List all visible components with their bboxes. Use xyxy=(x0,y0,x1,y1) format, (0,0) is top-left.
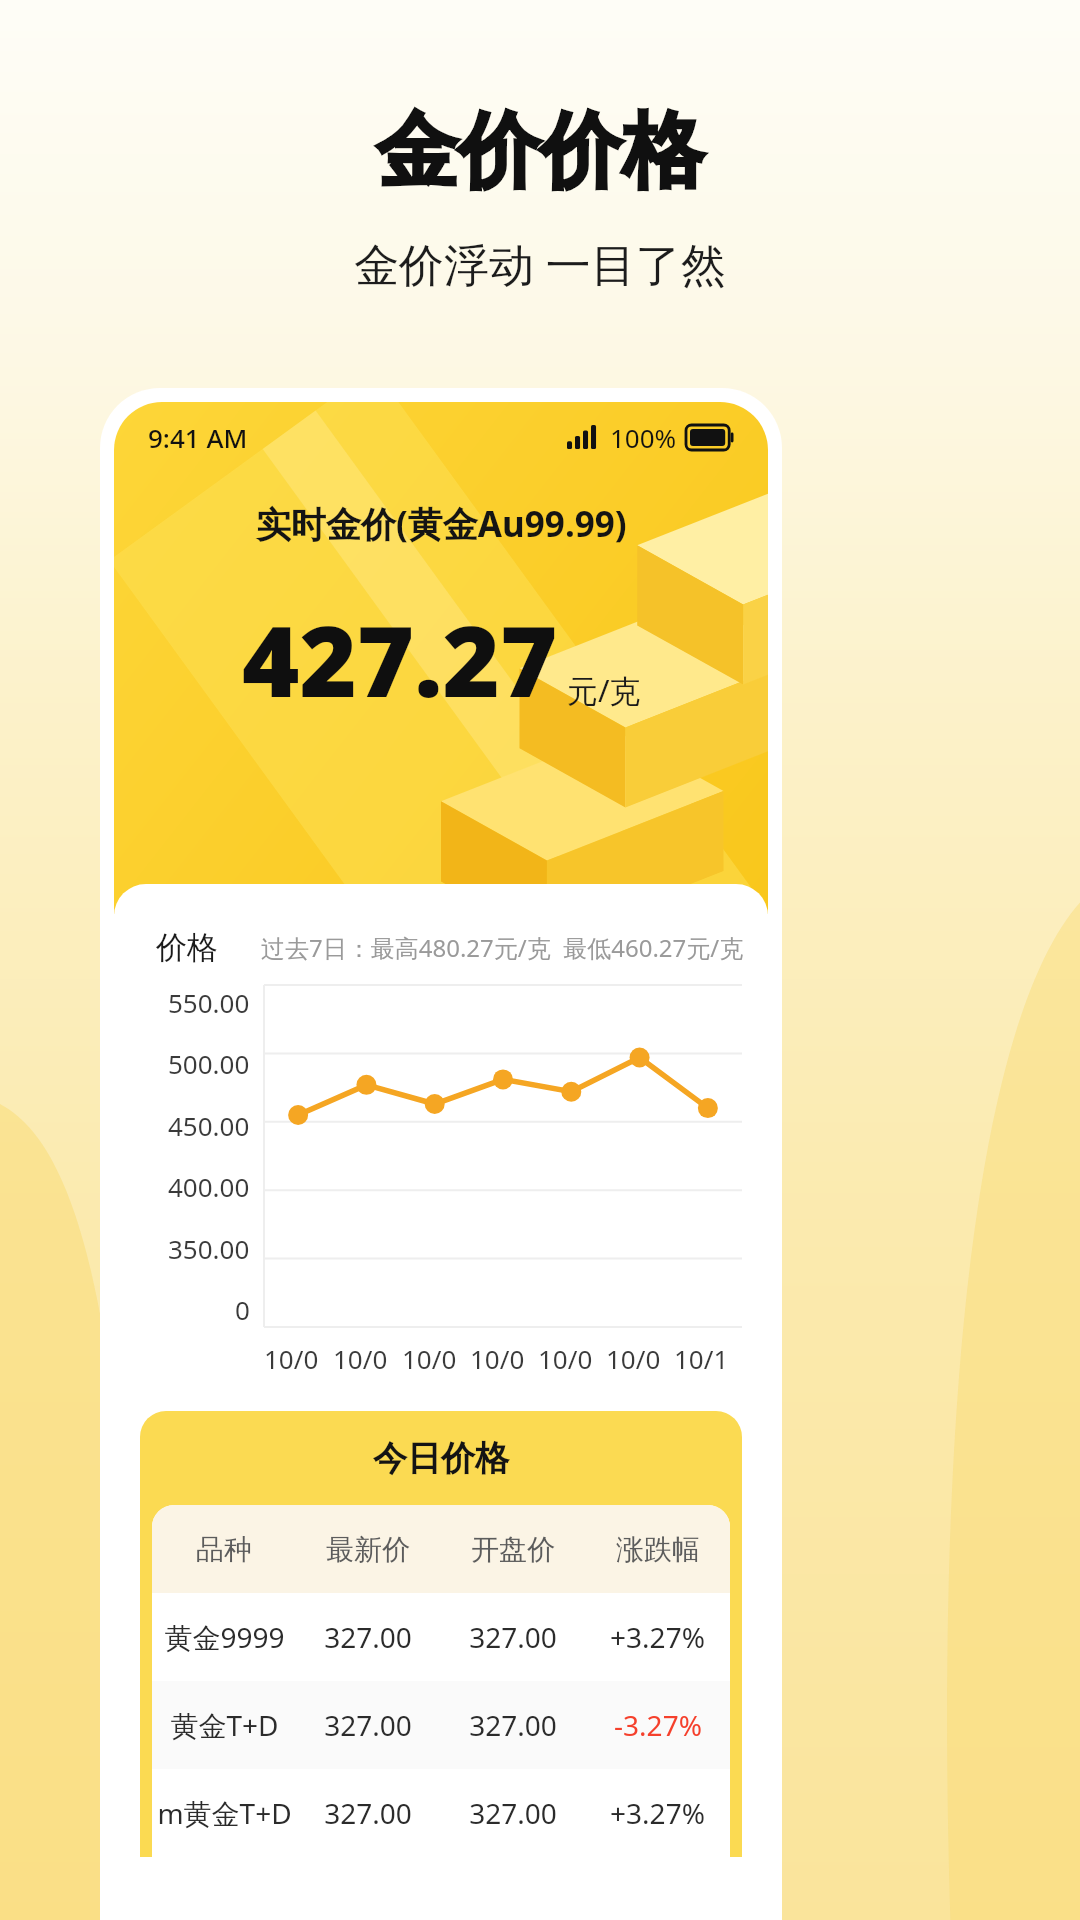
staticText: 金价价格 xyxy=(376,100,704,203)
staticText: +3.27% xyxy=(610,1618,705,1656)
staticText: 427.27 xyxy=(242,592,558,725)
staticText: 327.00 xyxy=(469,1706,557,1744)
staticText: 100% xyxy=(610,420,677,455)
staticText: 10/07 xyxy=(470,1341,538,1385)
staticText: -3.27% xyxy=(614,1706,702,1744)
button[interactable]: 今日价格 xyxy=(140,1411,742,1857)
staticText: 实时金价(黄金Au99.99) xyxy=(256,500,627,548)
staticText: 400.00 xyxy=(168,1169,250,1204)
staticText: 品种 xyxy=(196,1532,252,1567)
staticText: 327.00 xyxy=(469,1618,557,1656)
button[interactable]: 黄金T+D xyxy=(152,1681,730,1769)
staticText: 涨跌幅 xyxy=(616,1532,700,1567)
staticText: 327.00 xyxy=(324,1618,412,1656)
staticText: 500.00 xyxy=(168,1046,250,1081)
staticText: 327.00 xyxy=(324,1706,412,1744)
staticText: 过去7日：最高480.27元/克 最低460.27元/克 xyxy=(261,931,744,964)
staticText: 金价浮动 一目了然 xyxy=(354,233,726,294)
staticText: m黄金T+D xyxy=(157,1794,292,1832)
staticText: 价格 xyxy=(156,928,218,967)
staticText: 今日价格 xyxy=(373,1437,509,1480)
staticText: 350.00 xyxy=(168,1231,250,1266)
staticText: 10/05 xyxy=(333,1341,402,1385)
staticText: 元/克 xyxy=(567,669,641,711)
staticText: 327.00 xyxy=(469,1794,557,1832)
staticText: 9:41 AM xyxy=(148,420,248,455)
staticText: 10/10 xyxy=(674,1341,742,1385)
staticText: 0 xyxy=(235,1292,250,1327)
staticText: 最新价 xyxy=(326,1532,410,1567)
staticText: 黄金9999 xyxy=(164,1618,285,1656)
button[interactable]: 品种 xyxy=(152,1505,730,1593)
staticText: 550.00 xyxy=(168,985,250,1020)
button[interactable]: m黄金T+D xyxy=(152,1769,730,1857)
staticText: 10/09 xyxy=(606,1341,674,1385)
staticText: 10/08 xyxy=(538,1341,606,1385)
staticText: 327.00 xyxy=(324,1794,412,1832)
staticText: +3.27% xyxy=(610,1794,705,1832)
staticText: 黄金T+D xyxy=(170,1706,279,1744)
staticText: 开盘价 xyxy=(471,1532,555,1567)
staticText: 450.00 xyxy=(168,1108,250,1143)
button[interactable]: 黄金9999 xyxy=(152,1593,730,1681)
staticText: 10/04 xyxy=(264,1341,333,1385)
staticText: 10/06 xyxy=(402,1341,470,1385)
